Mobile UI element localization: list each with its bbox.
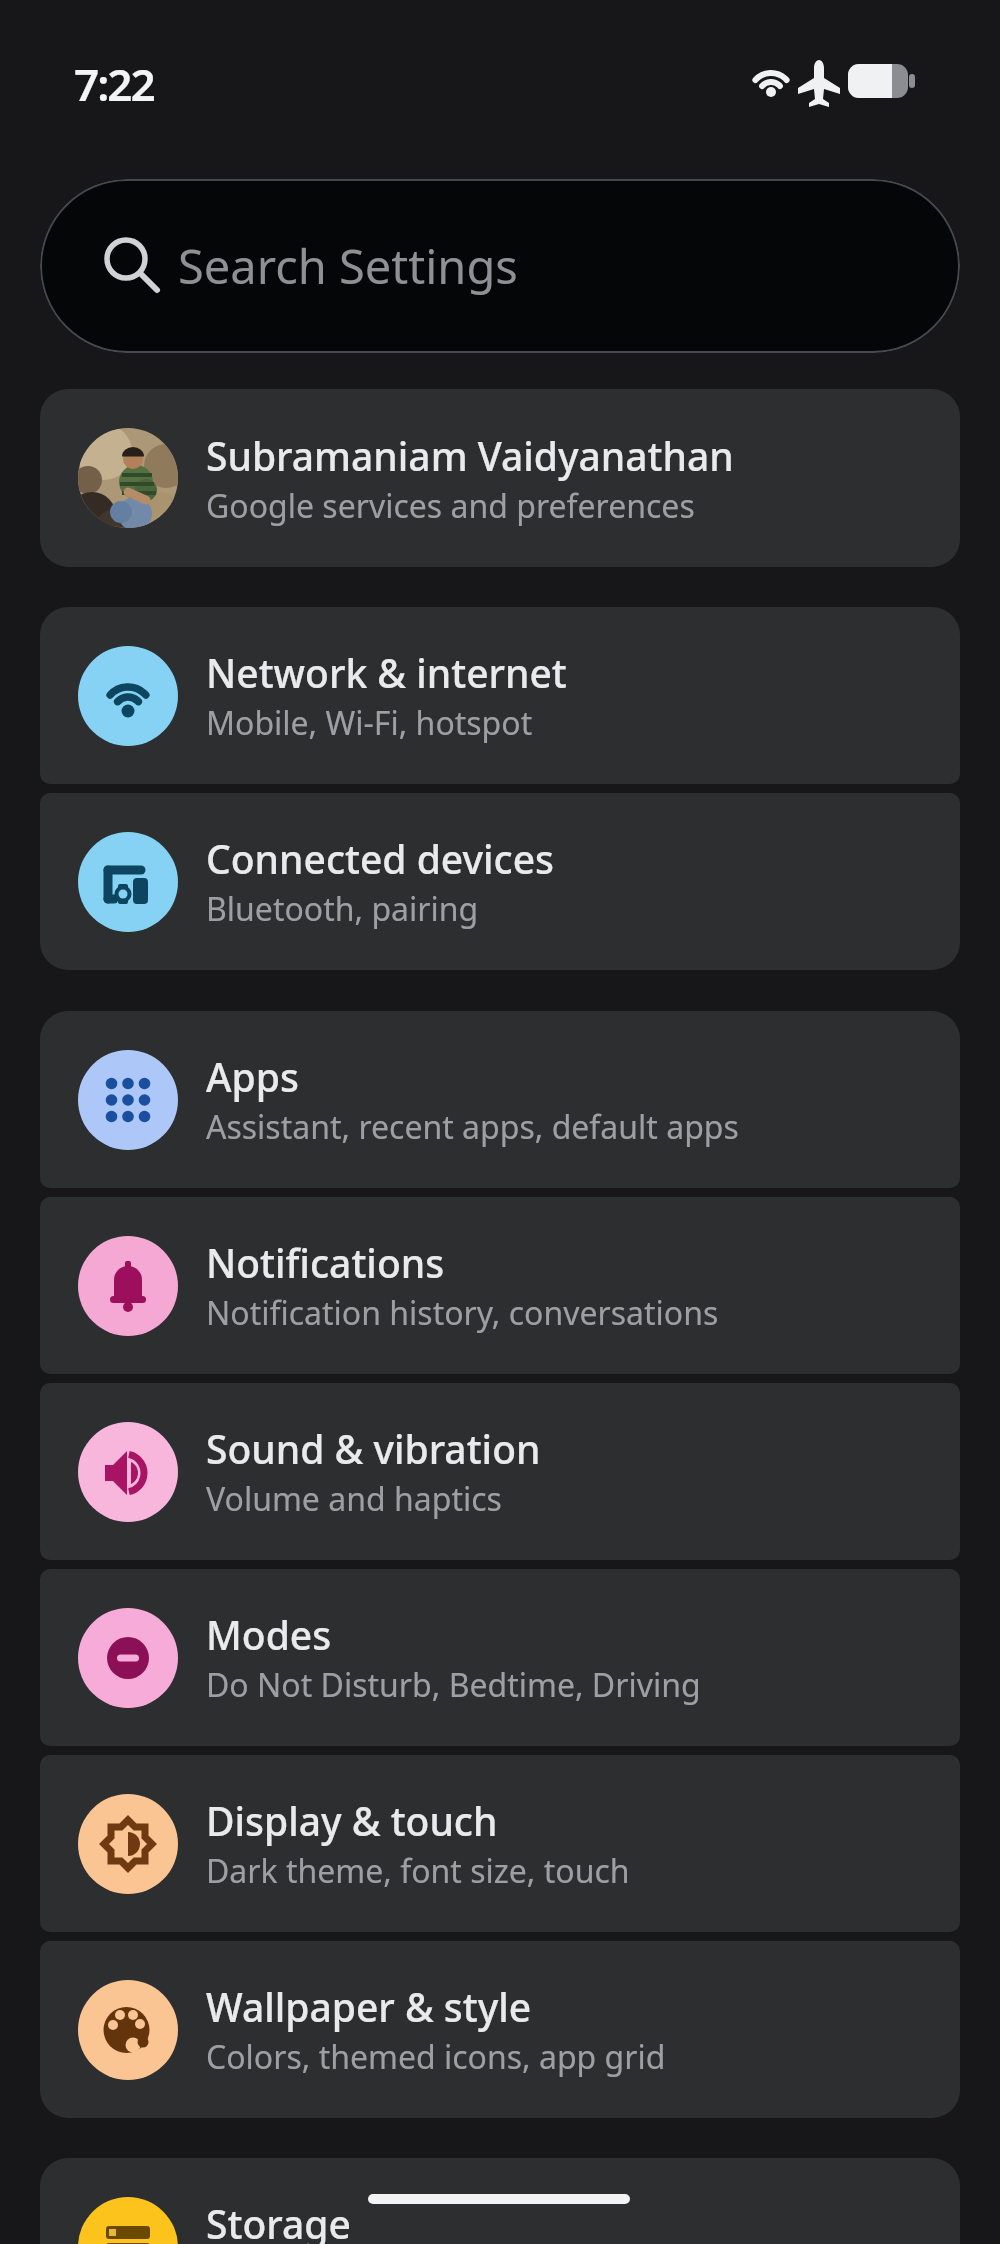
staticText: Dark theme, font size, touch bbox=[206, 1849, 630, 1893]
staticText: Notifications bbox=[206, 1236, 445, 1289]
staticText: Notification history, conversations bbox=[206, 1291, 719, 1335]
button[interactable]: Display & touch bbox=[40, 1755, 960, 1932]
staticText: Assistant, recent apps, default apps bbox=[206, 1105, 739, 1149]
staticText: Volume and haptics bbox=[206, 1477, 502, 1521]
staticText: Storage bbox=[206, 2197, 351, 2244]
staticText: Display & touch bbox=[206, 1794, 498, 1847]
staticText: Wallpaper & style bbox=[206, 1980, 532, 2033]
button[interactable]: Subramaniam Vaidyanathan bbox=[40, 389, 960, 567]
button[interactable]: Modes bbox=[40, 1569, 960, 1746]
button[interactable]: Apps bbox=[40, 1011, 960, 1188]
button[interactable]: Search Settings bbox=[40, 179, 960, 353]
button[interactable]: Network & internet bbox=[40, 607, 960, 784]
staticText: Subramaniam Vaidyanathan bbox=[206, 429, 734, 482]
staticText: Modes bbox=[206, 1608, 332, 1661]
staticText: Google services and preferences bbox=[206, 484, 695, 528]
staticText: Connected devices bbox=[206, 832, 555, 885]
button[interactable]: Wallpaper & style bbox=[40, 1941, 960, 2118]
staticText: 7:22 bbox=[74, 54, 154, 114]
staticText: Do Not Disturb, Bedtime, Driving bbox=[206, 1663, 701, 1707]
button[interactable]: Sound & vibration bbox=[40, 1383, 960, 1560]
staticText: Search Settings bbox=[178, 234, 518, 298]
button[interactable]: Storage bbox=[40, 2158, 960, 2244]
staticText: Colors, themed icons, app grid bbox=[206, 2035, 666, 2079]
button[interactable]: Notifications bbox=[40, 1197, 960, 1374]
staticText: Sound & vibration bbox=[206, 1422, 541, 1475]
staticText: Bluetooth, pairing bbox=[206, 887, 479, 931]
staticText: Mobile, Wi-Fi, hotspot bbox=[206, 701, 533, 745]
staticText: Apps bbox=[206, 1050, 299, 1103]
staticText: Network & internet bbox=[206, 646, 567, 699]
button[interactable]: Connected devices bbox=[40, 793, 960, 970]
